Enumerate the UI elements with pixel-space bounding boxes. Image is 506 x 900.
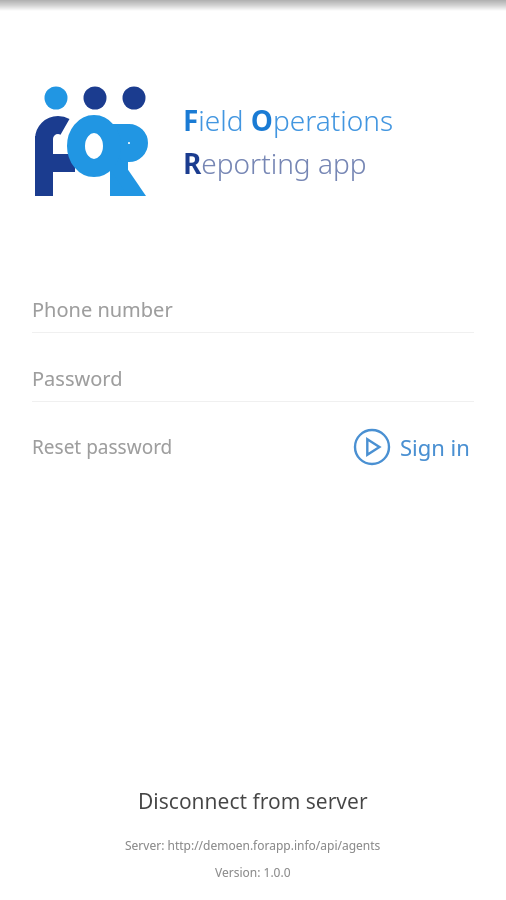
button[interactable]: Disconnect from server (114, 781, 392, 822)
staticText: Version: 1.0.0 (215, 864, 291, 880)
staticText: Disconnect from server (138, 787, 368, 816)
button[interactable]: Reset password (32, 424, 173, 470)
staticText: Reporting app (183, 144, 367, 182)
other: Sign in (353, 428, 391, 466)
button[interactable]: Sign in (349, 422, 474, 472)
staticText: Phone number (32, 296, 173, 323)
other: FOR logo (30, 85, 163, 198)
staticText: Field Operations (183, 101, 394, 139)
button[interactable]: Phone number (0, 286, 506, 333)
staticText: Reset password (32, 434, 173, 460)
staticText: Server: http://demoen.forapp.info/api/ag… (125, 837, 381, 853)
button[interactable]: Password (0, 355, 506, 402)
staticText: Sign in (400, 432, 470, 462)
staticText: Password (32, 365, 123, 392)
